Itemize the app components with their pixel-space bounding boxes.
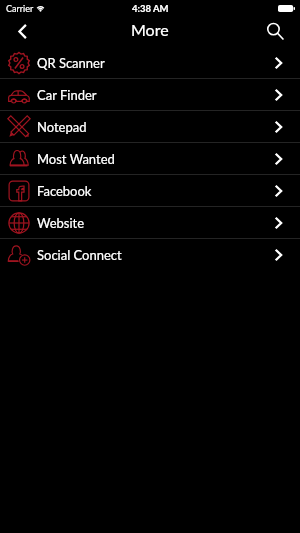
button[interactable]: Notepad xyxy=(0,111,300,142)
staticText: 4:38 AM xyxy=(132,3,169,14)
staticText: Notepad xyxy=(37,119,87,135)
button[interactable]: Most Wanted xyxy=(0,143,300,174)
staticText: Carrier xyxy=(6,3,34,14)
staticText: Most Wanted xyxy=(37,151,115,167)
button[interactable]: Social Connect xyxy=(0,239,300,270)
button[interactable]: Facebook xyxy=(0,175,300,206)
staticText: Facebook xyxy=(37,183,92,199)
staticText: Social Connect xyxy=(37,247,122,263)
button[interactable]: QR Scanner xyxy=(0,47,300,78)
staticText: QR Scanner xyxy=(37,55,105,71)
staticText: Website xyxy=(37,215,85,231)
button[interactable]: Website xyxy=(0,207,300,238)
staticText: Car Finder xyxy=(37,87,97,103)
staticText: More xyxy=(131,20,169,39)
button[interactable]: Back xyxy=(0,16,44,47)
button[interactable]: Search xyxy=(256,16,300,47)
button[interactable]: Car Finder xyxy=(0,79,300,110)
